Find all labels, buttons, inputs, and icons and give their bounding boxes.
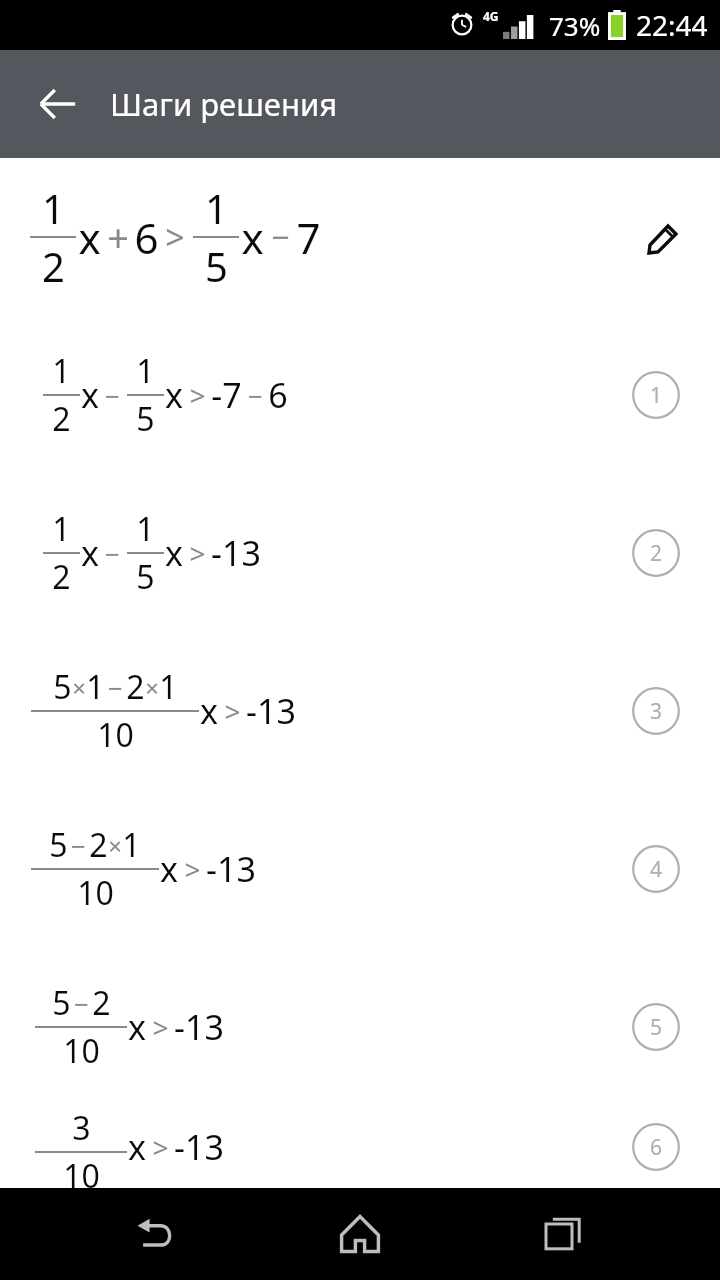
staticText: -13 [211, 530, 261, 576]
staticText: 1 [159, 665, 178, 709]
staticText: 5 [136, 397, 155, 441]
staticText: 3 [650, 697, 663, 726]
staticText: 2 [42, 239, 65, 293]
staticText: 5 [52, 981, 71, 1025]
staticText: x [200, 688, 218, 734]
staticText: 6 [134, 209, 159, 266]
staticText: 1 [122, 823, 141, 867]
staticText: -13 [206, 846, 256, 892]
staticText: 10 [63, 1029, 100, 1073]
staticText: > [165, 214, 185, 260]
staticText: − [105, 536, 120, 571]
staticText: − [71, 828, 86, 863]
staticText: x [81, 530, 99, 576]
staticText: − [105, 378, 120, 413]
staticText: 73% [549, 8, 601, 43]
staticText: x [165, 530, 183, 576]
staticText: − [108, 670, 123, 705]
staticText: 2 [650, 539, 663, 568]
staticText: 1 [136, 349, 155, 393]
button[interactable]: 1 [0, 158, 720, 316]
button[interactable]: 4 [632, 845, 680, 893]
staticText: 4 [650, 855, 663, 884]
staticText: 2 [92, 981, 111, 1025]
staticText: -7 [211, 372, 242, 418]
button[interactable]: 5 [632, 1003, 680, 1051]
staticText: 2 [89, 823, 108, 867]
staticText: 1 [42, 181, 65, 235]
staticText: 1 [650, 381, 663, 410]
button[interactable]: 3 [632, 687, 680, 735]
staticText: 1 [205, 181, 228, 235]
staticText: > [189, 534, 206, 572]
staticText: > [189, 376, 206, 414]
staticText: > [152, 1128, 169, 1166]
staticText: 1 [136, 507, 155, 551]
staticText: − [74, 986, 89, 1021]
staticText: -13 [174, 1124, 224, 1170]
staticText: 10 [77, 871, 114, 915]
staticText: x [160, 846, 178, 892]
staticText: × [145, 671, 159, 704]
staticText: 10 [97, 713, 134, 757]
staticText: − [248, 378, 263, 413]
staticText: 2 [52, 397, 71, 441]
staticText: 5 [650, 1013, 663, 1042]
button[interactable]: 5 [0, 948, 720, 1106]
staticText: 5 [136, 555, 155, 599]
button[interactable]: 1 [632, 371, 680, 419]
button[interactable]: Recent apps [516, 1188, 612, 1280]
button[interactable]: Edit equation [634, 207, 694, 267]
staticText: − [271, 215, 290, 259]
staticText: > [184, 850, 201, 888]
staticText: Шаги решения [110, 83, 338, 125]
button[interactable]: 5 [0, 632, 720, 790]
staticText: + [107, 211, 129, 263]
staticText: 5 [53, 665, 72, 709]
staticText: 1 [52, 349, 71, 393]
staticText: 1 [52, 507, 71, 551]
staticText: 2 [126, 665, 145, 709]
staticText: 1 [86, 665, 105, 709]
staticText: x [78, 209, 101, 266]
button[interactable]: Back [22, 68, 94, 140]
staticText: 6 [268, 372, 288, 418]
button[interactable]: Back [108, 1188, 204, 1280]
staticText: > [152, 1008, 169, 1046]
staticText: 6 [650, 1133, 663, 1162]
staticText: 7 [296, 209, 321, 266]
staticText: x [128, 1004, 146, 1050]
staticText: x [128, 1124, 146, 1170]
button[interactable]: 1 [0, 474, 720, 632]
staticText: 5 [205, 239, 228, 293]
button[interactable]: Home [312, 1188, 408, 1280]
staticText: × [108, 829, 122, 862]
button[interactable]: 5 [0, 790, 720, 948]
staticText: -13 [246, 688, 296, 734]
staticText: × [72, 671, 86, 704]
button[interactable]: 2 [632, 529, 680, 577]
button[interactable]: 3 [0, 1106, 720, 1188]
staticText: 2 [52, 555, 71, 599]
staticText: -13 [174, 1004, 224, 1050]
staticText: x [241, 209, 264, 266]
staticText: 3 [72, 1106, 91, 1150]
button[interactable]: 6 [632, 1123, 680, 1171]
staticText: 22:44 [636, 6, 708, 44]
button[interactable]: 1 [0, 316, 720, 474]
staticText: x [81, 372, 99, 418]
staticText: 5 [49, 823, 68, 867]
staticText: 10 [63, 1154, 100, 1188]
staticText: x [165, 372, 183, 418]
staticText: 4G [483, 8, 499, 24]
staticText: > [224, 692, 241, 730]
